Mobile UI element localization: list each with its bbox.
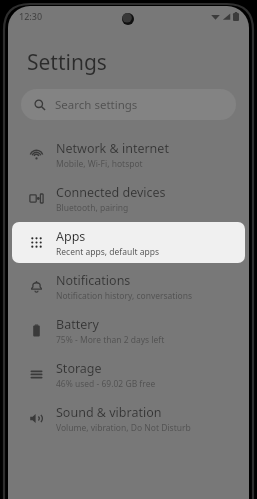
staticText: Volume, vibration, Do Not Disturb [56,422,191,434]
staticText: Notifications [56,272,131,289]
button[interactable]: Battery [8,310,249,351]
button[interactable]: Network & internet [8,134,249,175]
staticText: Bluetooth, pairing [56,202,129,214]
staticText: Battery [56,316,99,333]
staticText: Sound & vibration [56,404,162,421]
staticText: Connected devices [56,184,166,201]
staticText: 46% used - 69.02 GB free [56,378,156,390]
staticText: Settings [27,48,107,77]
staticText: Mobile, Wi-Fi, hotspot [56,158,143,170]
staticText: Storage [56,360,102,377]
staticText: Notification history, conversations [56,290,193,302]
button[interactable]: Connected devices [8,178,249,219]
staticText: 75% - More than 2 days left [56,334,165,346]
staticText: 12:30 [19,10,43,22]
staticText: Recent apps, default apps [56,246,160,258]
staticText: Apps [56,228,86,245]
button[interactable]: Apps [12,222,245,263]
button[interactable]: Search settings [21,89,236,120]
button[interactable]: Sound & vibration [8,398,249,439]
button[interactable]: Storage [8,354,249,395]
staticText: Search settings [55,97,138,113]
staticText: Network & internet [56,140,169,157]
button[interactable]: Notifications [8,266,249,307]
